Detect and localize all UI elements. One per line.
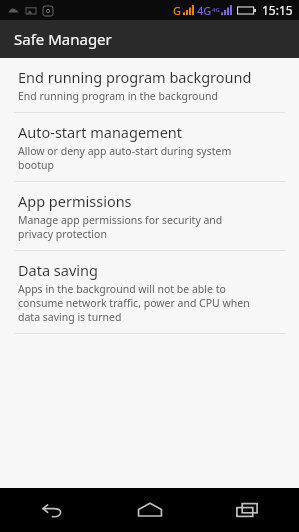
staticText: G (173, 3, 181, 18)
staticText: bootup (18, 158, 54, 172)
staticText: Apps in the background will not be able … (18, 282, 226, 296)
button[interactable]: Home (105, 488, 195, 532)
button[interactable]: App permissions (0, 182, 299, 250)
staticText: data saving is turned (18, 310, 122, 324)
staticText: Manage app permissions for security and (18, 213, 223, 227)
staticText: Safe Manager (14, 29, 112, 49)
staticText: App permissions (18, 191, 132, 211)
staticText: Data saving (18, 260, 98, 280)
staticText: End running program background (18, 67, 252, 87)
staticText: Allow or deny app auto-start during syst… (18, 144, 232, 158)
staticText: 4G (197, 3, 212, 18)
button[interactable]: Auto-start management (0, 113, 299, 181)
staticText: privacy protection (18, 227, 107, 241)
staticText: Auto-start management (18, 122, 183, 142)
staticText: 4G (212, 6, 220, 14)
button[interactable]: Data saving (0, 251, 299, 333)
button[interactable]: Back (7, 488, 97, 532)
button[interactable]: End running program background (0, 58, 299, 112)
button[interactable]: Recents (202, 488, 292, 532)
staticText: End running program in the background (18, 89, 218, 103)
staticText: consume network traffic, power and CPU w… (18, 296, 250, 310)
staticText: 15:15 (262, 2, 293, 18)
